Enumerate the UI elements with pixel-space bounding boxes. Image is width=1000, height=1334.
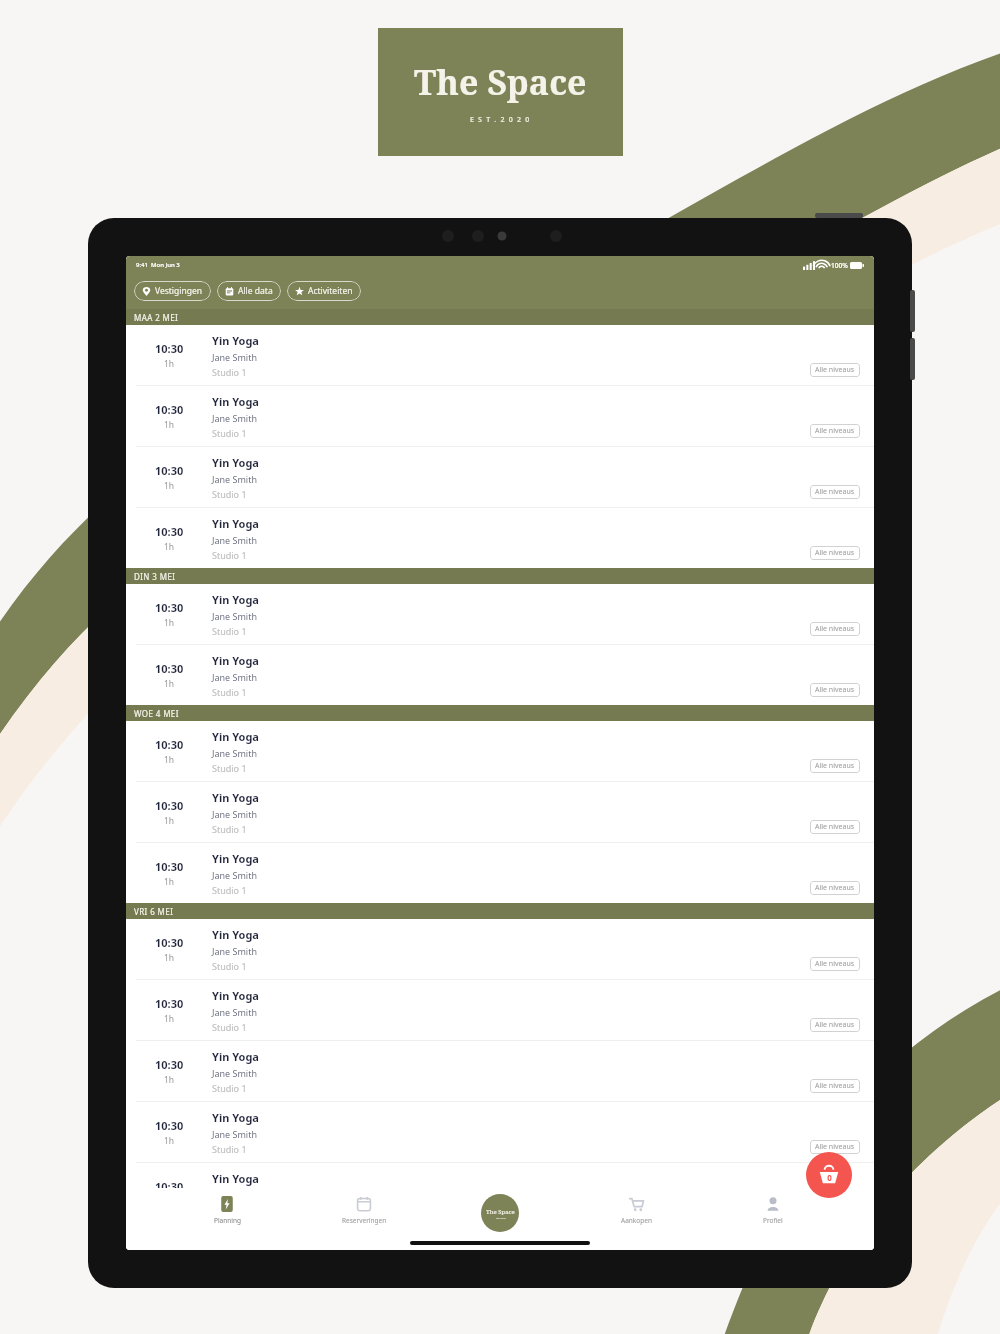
button[interactable]: Reserveringen	[329, 1194, 399, 1225]
button[interactable]: 10:30	[126, 1102, 874, 1163]
staticText: E S T . 2 0 2 0	[470, 115, 531, 125]
staticText: Studio 1	[212, 762, 247, 774]
staticText: Studio 1	[212, 625, 247, 637]
button[interactable]: 10:30	[126, 1041, 874, 1102]
button[interactable]: 10:30	[126, 508, 874, 568]
button[interactable]: Alle niveaus	[810, 1079, 860, 1093]
button[interactable]: 10:30	[126, 325, 874, 386]
staticText: 100%	[831, 261, 848, 270]
staticText: 1h	[164, 754, 175, 766]
staticText: Yin Yoga	[212, 1049, 259, 1064]
staticText: Alle niveaus	[815, 1142, 855, 1152]
button[interactable]: 10:30	[126, 919, 874, 980]
staticText: 10:30	[155, 1057, 184, 1072]
button[interactable]: 10:30	[126, 447, 874, 508]
button[interactable]: Vestigingen	[134, 281, 211, 301]
button[interactable]: 10:30	[126, 721, 874, 782]
staticText: 10:30	[155, 859, 184, 874]
button[interactable]: 10:30	[126, 1163, 874, 1223]
staticText: Studio 1	[212, 1143, 247, 1155]
staticText: 10:30	[155, 661, 184, 676]
staticText: Alle niveaus	[815, 883, 855, 893]
button[interactable]: 10:30	[126, 584, 874, 645]
staticText: 1h	[164, 815, 175, 827]
button[interactable]: Aankopen	[601, 1194, 671, 1225]
staticText: Planning	[214, 1216, 241, 1225]
staticText: 10:30	[155, 935, 184, 950]
button[interactable]: Profiel	[738, 1194, 808, 1225]
staticText: Alle niveaus	[815, 487, 855, 497]
staticText: Profiel	[763, 1216, 783, 1225]
staticText: Studio 1	[212, 823, 247, 835]
staticText: 10:30	[155, 1179, 184, 1194]
button[interactable]: Planning	[192, 1194, 262, 1225]
button[interactable]: Alle niveaus	[810, 546, 860, 560]
button[interactable]: Alle niveaus	[810, 485, 860, 499]
staticText: 10:30	[155, 737, 184, 752]
button[interactable]: 10:30	[126, 645, 874, 705]
staticText: Alle niveaus	[815, 959, 855, 969]
button[interactable]: Alle niveaus	[810, 881, 860, 895]
staticText: Studio 1	[212, 427, 247, 439]
staticText: Yin Yoga	[212, 1171, 259, 1186]
button[interactable]: Alle data	[217, 281, 281, 301]
button[interactable]: Alle niveaus	[810, 759, 860, 773]
button[interactable]: Alle niveaus	[810, 683, 860, 697]
button[interactable]: Alle niveaus	[810, 1140, 860, 1154]
staticText: Yin Yoga	[212, 1110, 259, 1125]
staticText: 1h	[164, 952, 175, 964]
staticText: Studio 1	[212, 1021, 247, 1033]
staticText: Alle niveaus	[815, 822, 855, 832]
staticText: Alle niveaus	[815, 1020, 855, 1030]
staticText: Studio 1	[212, 960, 247, 972]
staticText: 10:30	[155, 463, 184, 478]
staticText: Jane Smith	[212, 1128, 257, 1140]
staticText: MAA 2 MEI	[134, 312, 179, 323]
staticText: Jane Smith	[212, 808, 257, 820]
staticText: 1h	[164, 1074, 175, 1086]
button[interactable]: 10:30	[126, 843, 874, 903]
staticText: Yin Yoga	[212, 653, 259, 668]
staticText: Studio 1	[212, 884, 247, 896]
staticText: 0	[827, 1172, 832, 1183]
button[interactable]: 10:30	[126, 386, 874, 447]
staticText: 1h	[164, 678, 175, 690]
staticText: Vestigingen	[155, 285, 203, 297]
button[interactable]: 10:30	[126, 782, 874, 843]
staticText: 10:30	[155, 798, 184, 813]
button[interactable]: The Space	[378, 28, 623, 156]
staticText: Jane Smith	[212, 473, 257, 485]
button[interactable]: Alle niveaus	[810, 622, 860, 636]
staticText: Jane Smith	[212, 671, 257, 683]
staticText: Alle niveaus	[815, 761, 855, 771]
staticText: Alle niveaus	[815, 426, 855, 436]
staticText: Jane Smith	[212, 869, 257, 881]
staticText: Alle niveaus	[815, 548, 855, 558]
button[interactable]: Alle niveaus	[810, 820, 860, 834]
button[interactable]: Alle niveaus	[810, 363, 860, 377]
button[interactable]: The Space home	[481, 1194, 519, 1232]
staticText: Aankopen	[621, 1216, 652, 1225]
staticText: The Space	[486, 1208, 515, 1216]
staticText: 10:30	[155, 524, 184, 539]
staticText: Yin Yoga	[212, 516, 259, 531]
staticText: 1h	[164, 419, 175, 431]
button[interactable]: Activiteiten	[287, 281, 361, 301]
staticText: Studio 1	[212, 686, 247, 698]
staticText: Yin Yoga	[212, 455, 259, 470]
staticText: Jane Smith	[212, 412, 257, 424]
button[interactable]: Winkelmandje, 0 items	[806, 1152, 852, 1198]
button[interactable]: Alle niveaus	[810, 424, 860, 438]
button[interactable]: Alle niveaus	[810, 957, 860, 971]
button[interactable]: 10:30	[126, 980, 874, 1041]
staticText: Studio 1	[212, 549, 247, 561]
staticText: The Space	[414, 59, 587, 105]
staticText: Yin Yoga	[212, 333, 259, 348]
staticText: 10:30	[155, 600, 184, 615]
staticText: Alle data	[238, 285, 273, 297]
staticText: 10:30	[155, 341, 184, 356]
button[interactable]: Alle niveaus	[810, 1018, 860, 1032]
